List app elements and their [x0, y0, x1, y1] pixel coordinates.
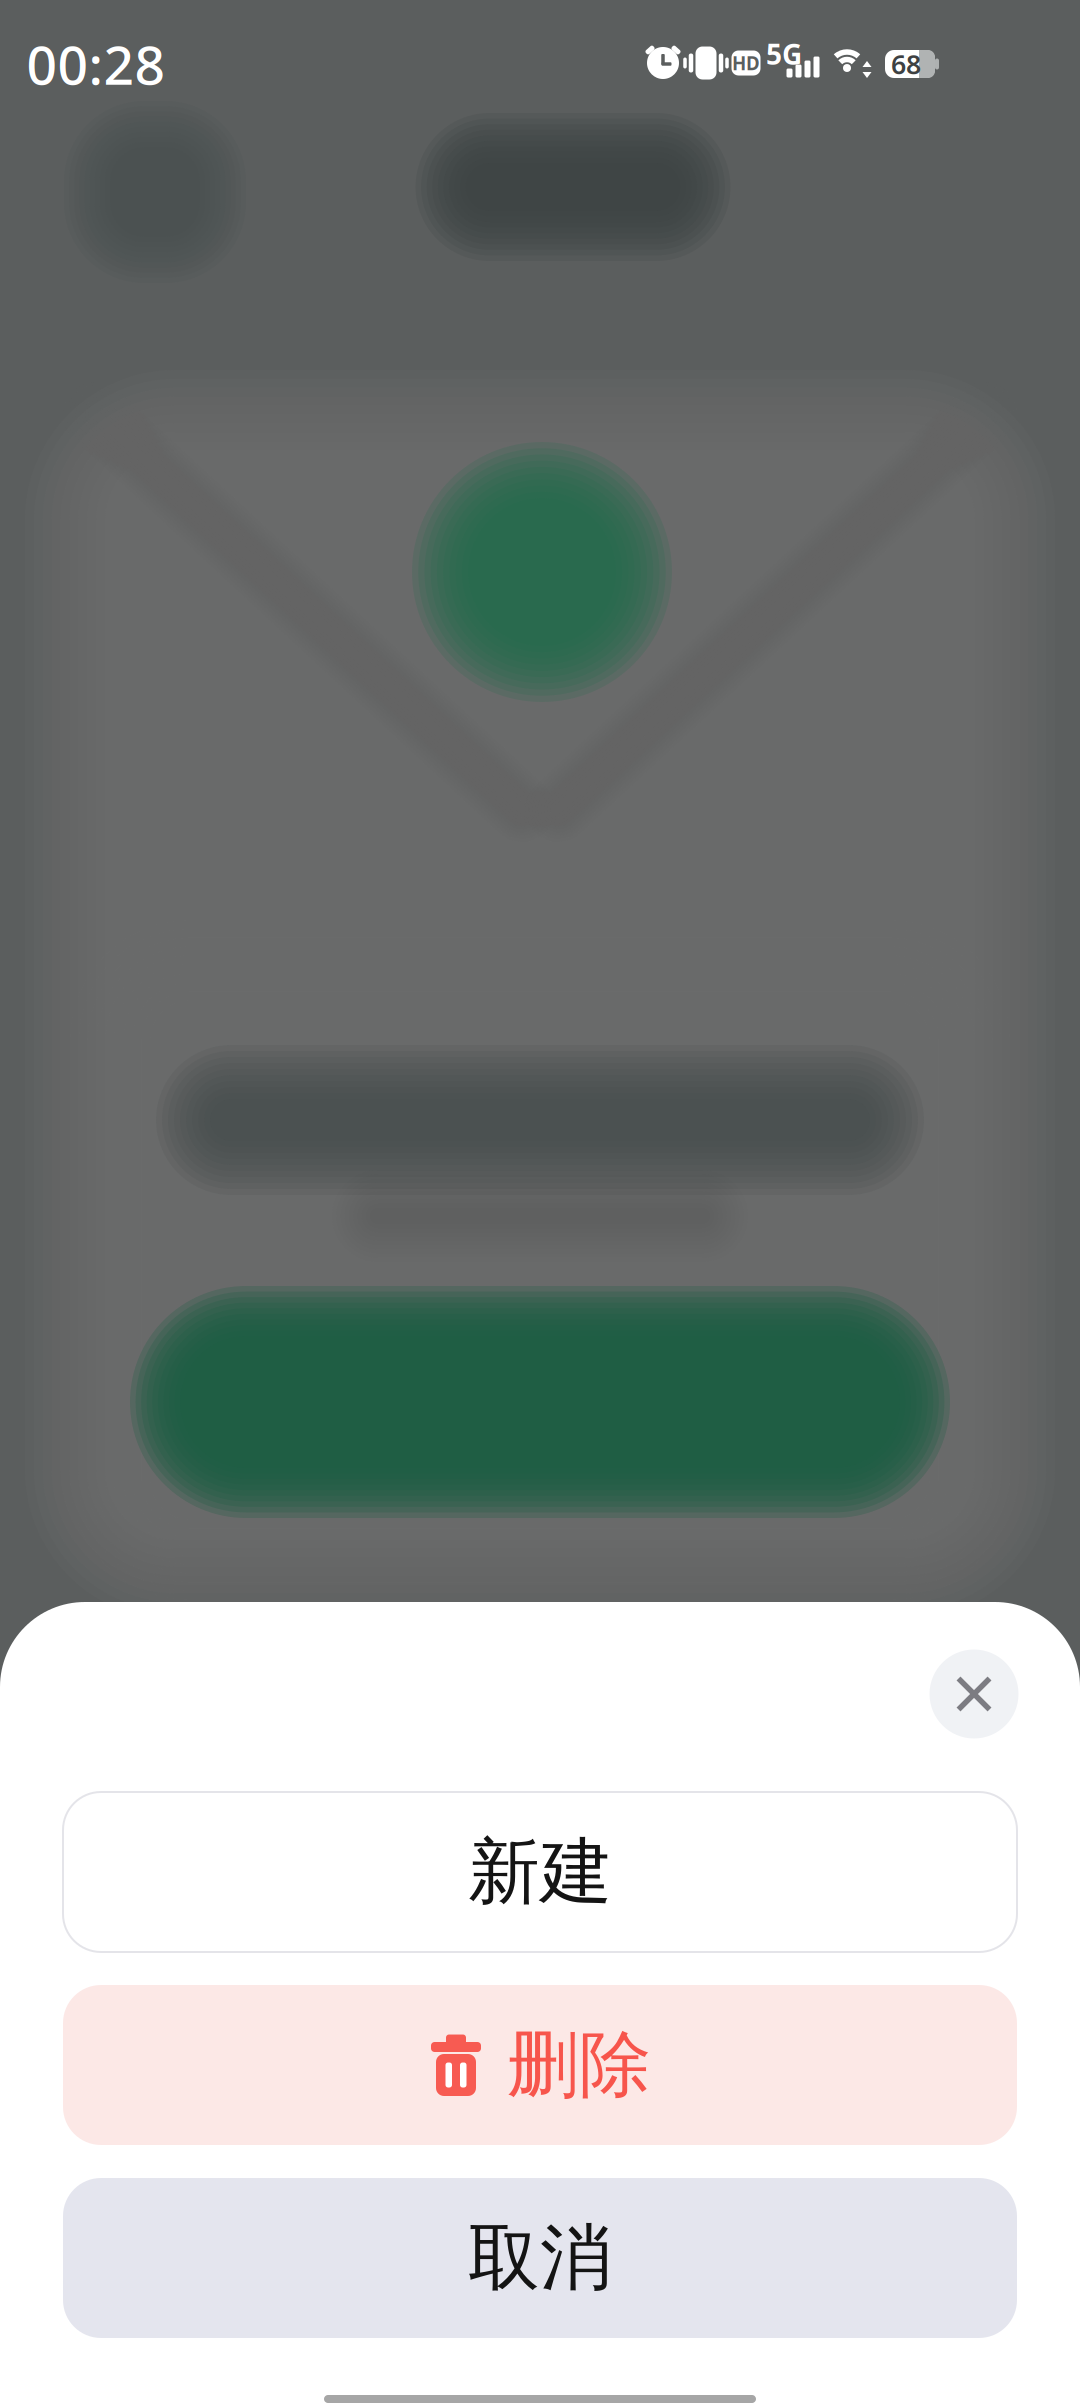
button[interactable]: 新建 [63, 1792, 1017, 1952]
staticText: 新建 [468, 1828, 612, 1916]
staticText: 取消 [468, 2214, 612, 2302]
staticText: 5G [766, 35, 802, 73]
staticText: HD [732, 51, 760, 75]
staticText: 68 [891, 46, 921, 82]
staticText: 00:28 [26, 29, 165, 99]
button[interactable]: 取消 [63, 2178, 1017, 2338]
staticText: 删除 [507, 2021, 651, 2109]
button[interactable]: Close [929, 1649, 1018, 1738]
button[interactable]: 删除 [63, 1985, 1017, 2145]
